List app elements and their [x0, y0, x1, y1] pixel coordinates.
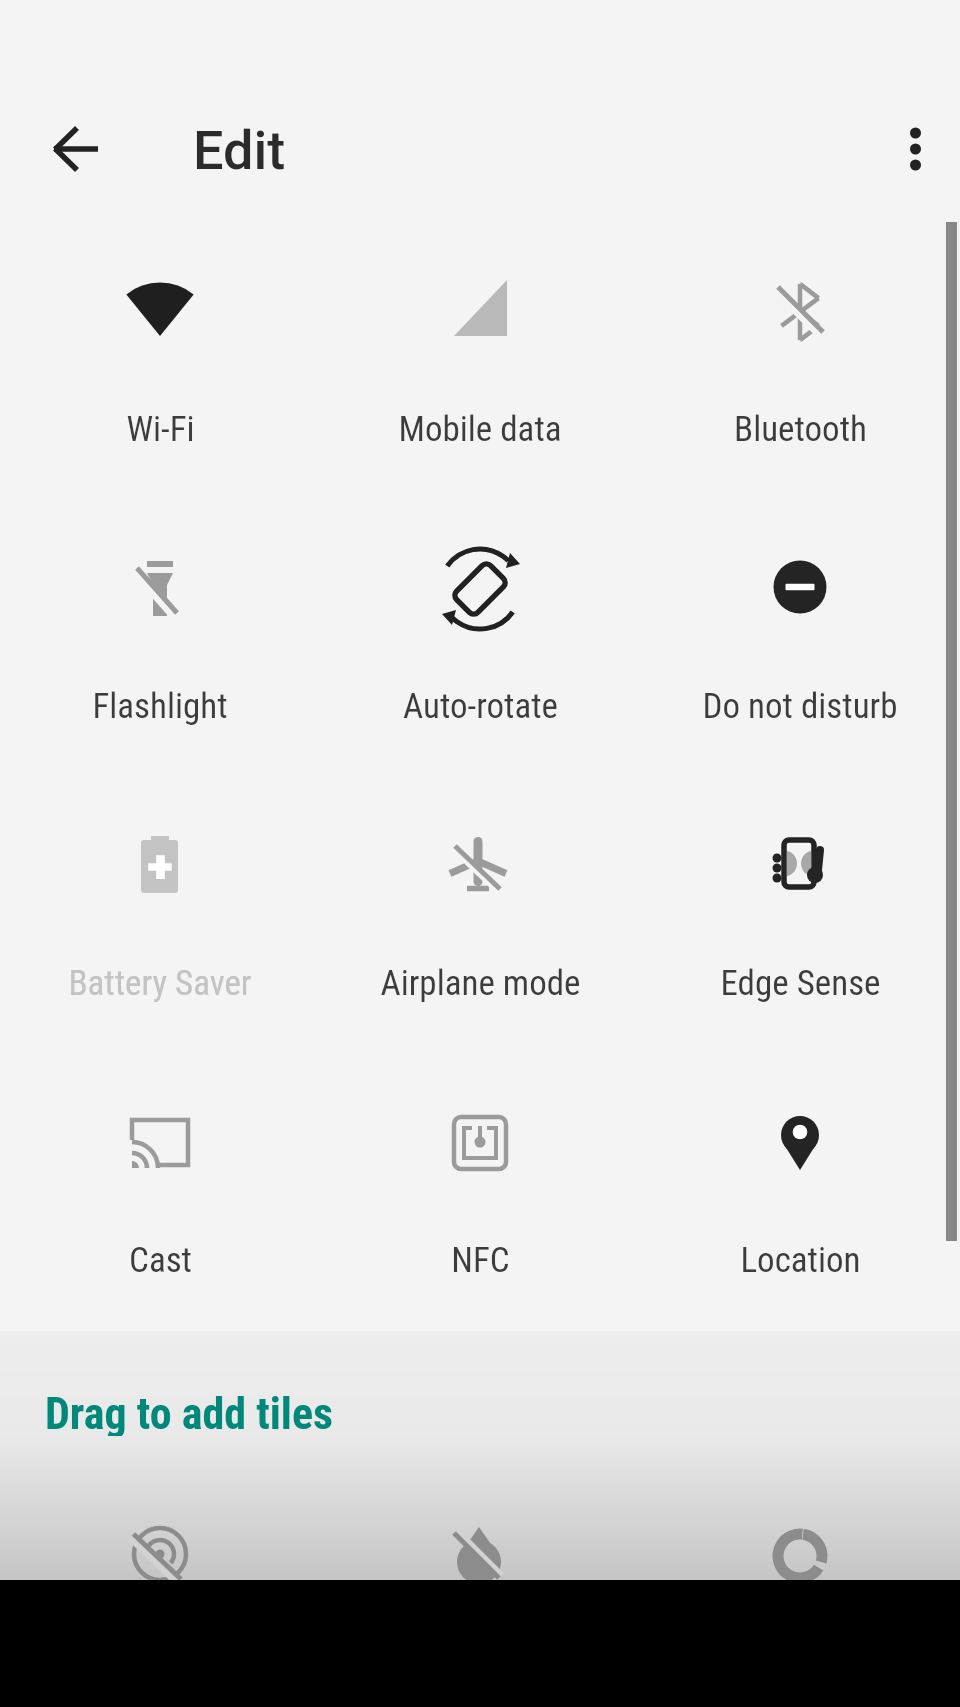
- staticText: Wi-Fi: [126, 409, 195, 450]
- button[interactable]: [20, 1490, 300, 1580]
- button[interactable]: Auto-rotate: [340, 535, 620, 730]
- staticText: Flashlight: [92, 686, 228, 727]
- staticText: Edge Sense: [720, 963, 881, 1004]
- staticText: Edit: [193, 119, 286, 182]
- button[interactable]: Mobile data: [340, 258, 620, 453]
- staticText: Mobile data: [398, 409, 562, 450]
- button[interactable]: NFC: [340, 1089, 620, 1284]
- staticText: Do not disturb: [702, 686, 898, 727]
- button[interactable]: [340, 1490, 620, 1580]
- button[interactable]: Wi-Fi: [20, 258, 300, 453]
- button[interactable]: Edge Sense: [660, 812, 940, 1007]
- staticText: Airplane mode: [380, 963, 581, 1004]
- staticText: Cast: [129, 1240, 192, 1281]
- button[interactable]: Battery Saver: [20, 812, 300, 1007]
- button[interactable]: [660, 1490, 940, 1580]
- staticText: Auto-rotate: [403, 686, 558, 727]
- staticText: Drag to add tiles: [45, 1388, 333, 1436]
- button[interactable]: [865, 113, 937, 185]
- staticText: Bluetooth: [734, 409, 867, 450]
- button[interactable]: Flashlight: [20, 535, 300, 730]
- staticText: Location: [740, 1240, 861, 1281]
- button[interactable]: Bluetooth: [660, 258, 940, 453]
- button[interactable]: [40, 113, 112, 185]
- button[interactable]: Cast: [20, 1089, 300, 1284]
- button[interactable]: Do not disturb: [660, 535, 940, 730]
- staticText: Battery Saver: [68, 963, 252, 1004]
- button[interactable]: Location: [660, 1089, 940, 1284]
- staticText: NFC: [451, 1240, 510, 1281]
- button[interactable]: Airplane mode: [340, 812, 620, 1007]
